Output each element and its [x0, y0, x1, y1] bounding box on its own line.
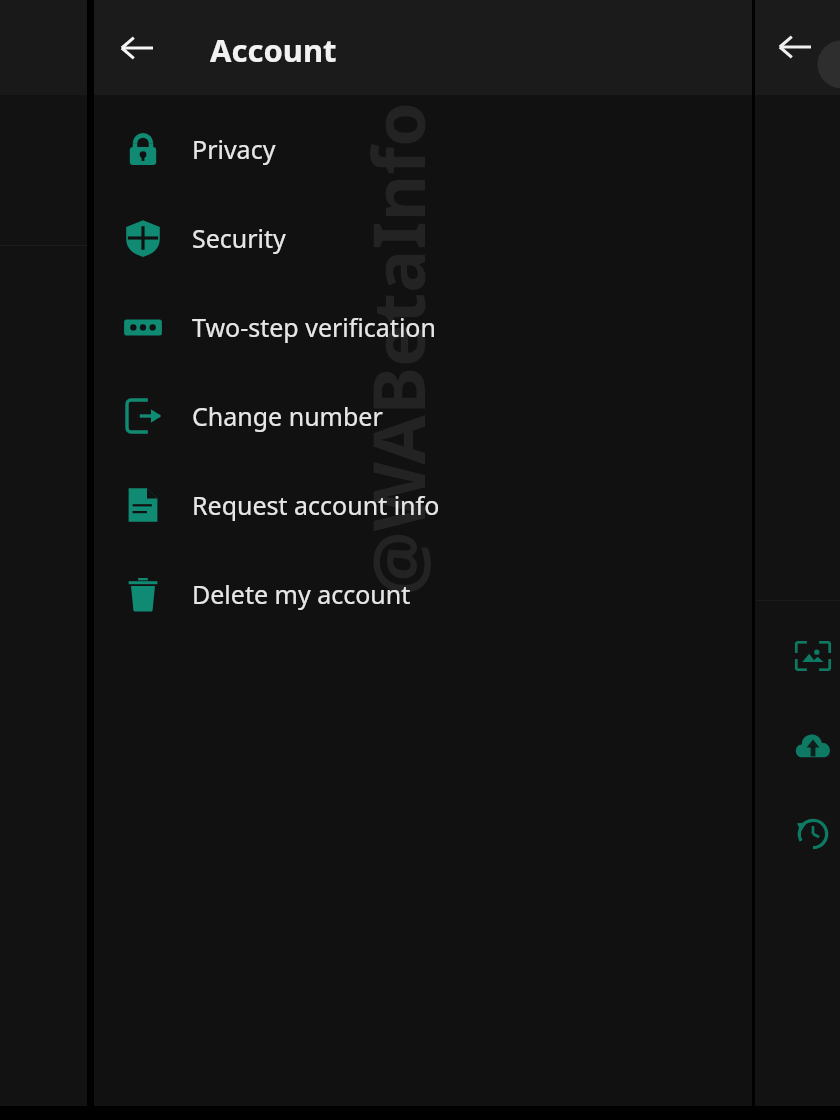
button[interactable]: Back: [775, 27, 815, 67]
button[interactable]: Two-step verification: [94, 282, 752, 371]
staticText: Privacy: [192, 132, 276, 166]
staticText: Change number: [192, 399, 383, 433]
staticText: Two-step verification: [192, 310, 436, 344]
staticText: Request account info: [192, 488, 440, 522]
button[interactable]: History: [791, 812, 835, 856]
button[interactable]: Change number: [94, 371, 752, 460]
staticText: Account: [210, 29, 337, 71]
staticText: Security: [192, 221, 286, 255]
button[interactable]: Security: [94, 193, 752, 282]
staticText: Delete my account: [192, 577, 411, 611]
button[interactable]: Back: [116, 27, 158, 69]
button[interactable]: Backup: [791, 724, 835, 768]
button[interactable]: Media: [791, 634, 835, 678]
button[interactable]: Delete my account: [94, 549, 752, 638]
button[interactable]: Request account info: [94, 460, 752, 549]
staticText: @WABetaInfo: [347, 101, 445, 596]
button[interactable]: Privacy: [94, 104, 752, 193]
